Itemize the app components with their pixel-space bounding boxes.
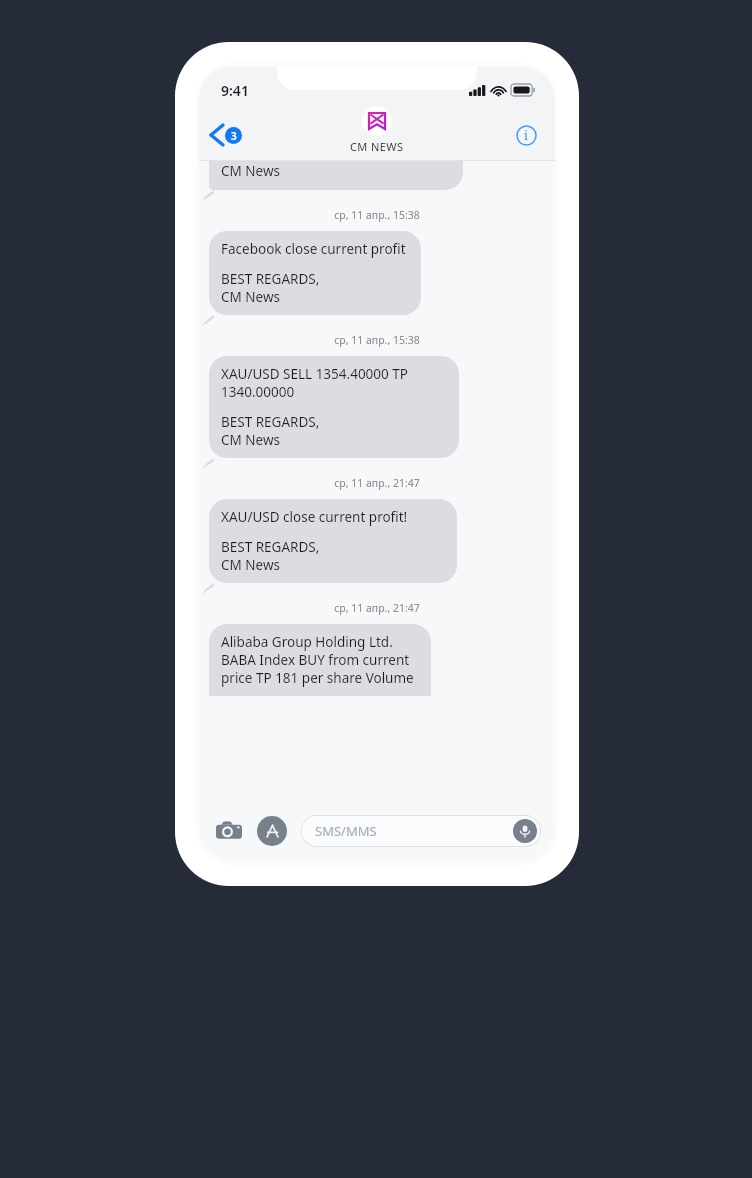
staticText: CM News (221, 431, 280, 449)
staticText: Alibaba Group Holding Ltd. (221, 633, 393, 651)
button[interactable]: Camera (213, 815, 245, 847)
button[interactable]: XAU/USD SELL 1354.40000 TP (209, 356, 459, 458)
button[interactable]: Facebook close current profit (209, 231, 421, 315)
staticText: XAU/USD SELL 1354.40000 TP (221, 365, 408, 383)
staticText: BEST REGARDS, (221, 270, 320, 288)
staticText: ср, 11 апр., 15:38 (334, 208, 420, 222)
staticText: CM NEWS (350, 139, 404, 154)
button[interactable]: Alibaba Group Holding Ltd. (209, 624, 431, 696)
button[interactable]: SMS/MMS (301, 815, 541, 847)
staticText: i (524, 127, 528, 143)
button[interactable]: App Store (257, 816, 287, 846)
staticText: ср, 11 апр., 15:38 (334, 333, 420, 347)
staticText: CM News (221, 556, 280, 574)
button[interactable]: XAU/USD close current profit! (209, 499, 457, 583)
staticText: 9:41 (221, 81, 249, 100)
button[interactable]: CM News (209, 160, 463, 190)
staticText: BEST REGARDS, (221, 413, 320, 431)
staticText: BABA Index BUY from current (221, 651, 410, 669)
staticText: 3 (231, 129, 237, 143)
button[interactable]: Info (513, 122, 539, 148)
button[interactable]: CM NEWS (350, 106, 404, 154)
staticText: ср, 11 апр., 21:47 (334, 476, 420, 490)
staticText: price TP 181 per share Volume (221, 669, 414, 687)
button[interactable]: Dictate (513, 819, 537, 843)
staticText: 1340.00000 (221, 383, 295, 401)
staticText: BEST REGARDS, (221, 538, 320, 556)
staticText: ср, 11 апр., 21:47 (334, 601, 420, 615)
staticText: Facebook close current profit (221, 240, 406, 258)
button[interactable]: Back, 3 unread (207, 121, 246, 149)
staticText: CM News (221, 162, 280, 180)
staticText: XAU/USD close current profit! (221, 508, 408, 526)
staticText: CM News (221, 288, 280, 306)
staticText: SMS/MMS (315, 822, 377, 840)
